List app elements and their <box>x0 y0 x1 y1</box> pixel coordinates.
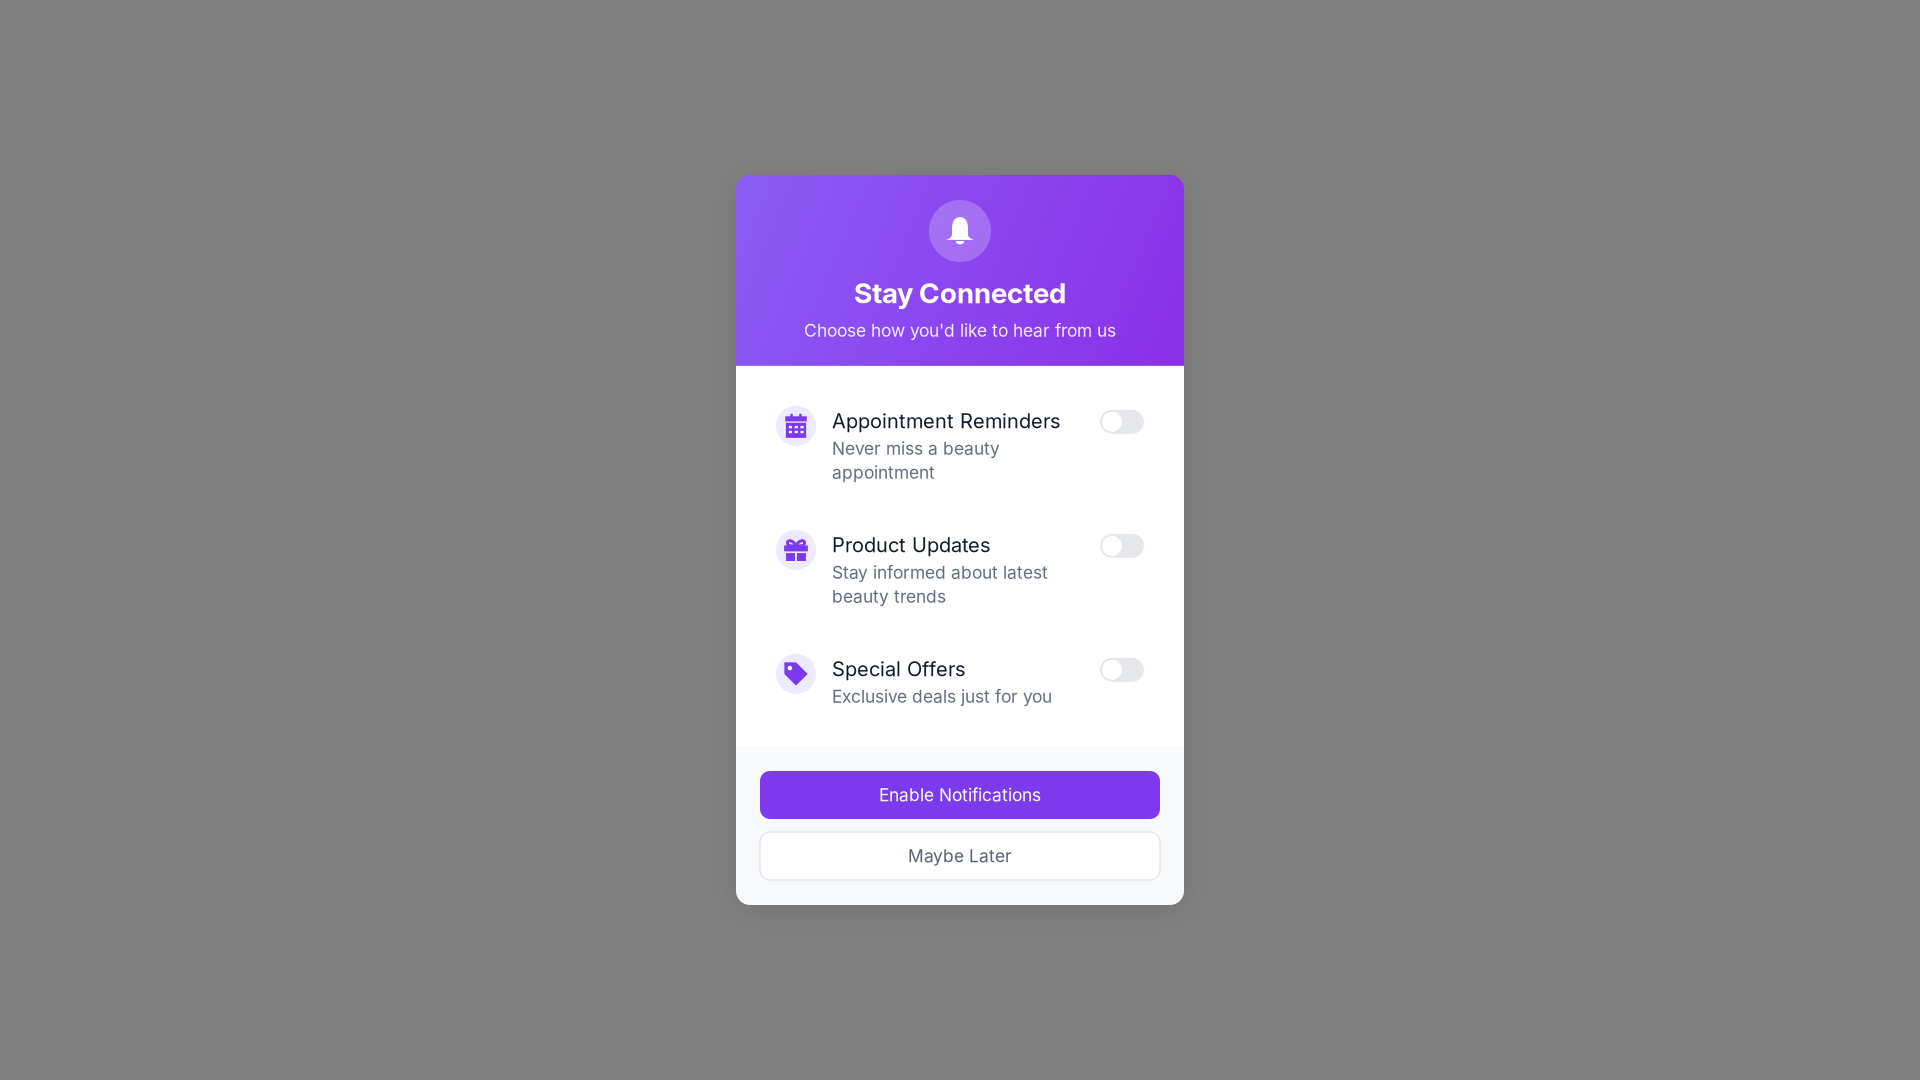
staticText: Enable Notifications <box>879 784 1041 805</box>
button[interactable]: Toggle notification <box>1100 410 1144 434</box>
button[interactable]: Enable Notifications <box>760 771 1160 819</box>
staticText: Maybe Later <box>908 845 1012 866</box>
button[interactable]: Product Updates <box>776 528 1144 607</box>
button[interactable]: Special Offers <box>776 652 1144 707</box>
staticText: Stay informed about latest beauty trends <box>832 562 1048 607</box>
button[interactable]: Maybe Later <box>760 832 1160 880</box>
button[interactable]: Appointment Reminders <box>776 404 1144 483</box>
staticText: Never miss a beauty appointment <box>832 438 1000 483</box>
button[interactable]: Toggle notification <box>1100 658 1144 682</box>
staticText: Product Updates <box>832 533 990 557</box>
staticText: Choose how you'd like to hear from us <box>804 320 1116 341</box>
staticText: Special Offers <box>832 657 965 681</box>
staticText: Exclusive deals just for you <box>832 686 1052 707</box>
staticText: Appointment Reminders <box>832 409 1060 433</box>
button[interactable]: Toggle notification <box>1100 534 1144 558</box>
staticText: Stay Connected <box>854 276 1066 310</box>
